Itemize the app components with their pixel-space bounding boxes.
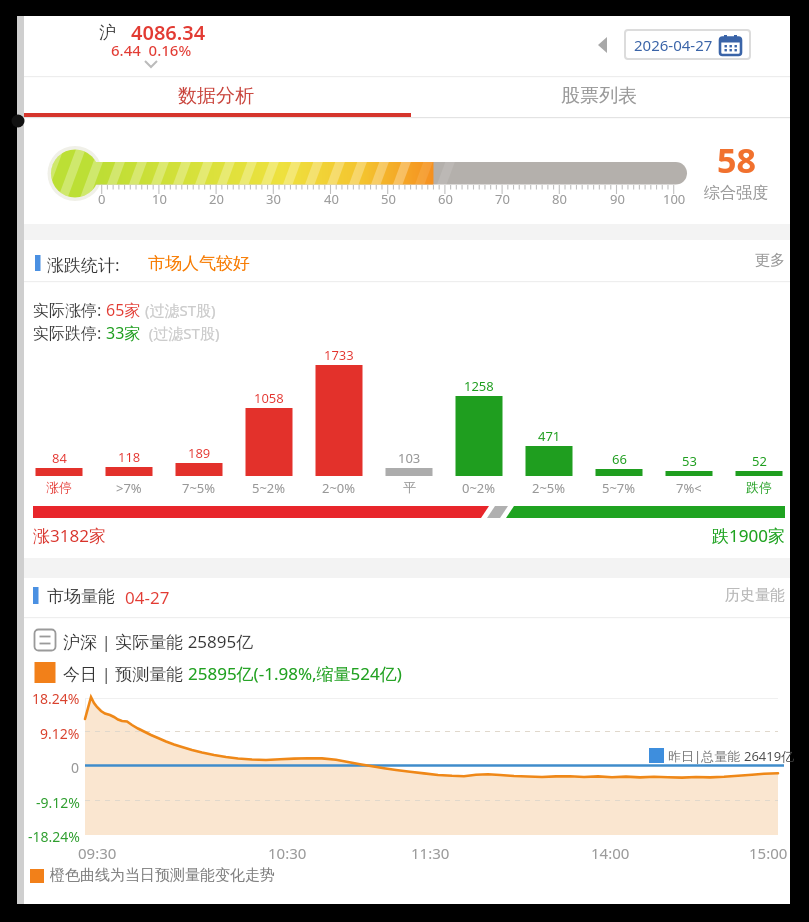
staticText: 跌停 [746,479,772,495]
staticText: 市场人气较好 [148,253,250,274]
staticText: 7~5% [182,479,216,497]
staticText: 实际跌停: [33,322,106,344]
staticText: 涨停 [46,479,72,495]
staticText: -9.12% [36,793,80,812]
staticText: 2026-04-27 [634,35,713,55]
staticText: 18.24% [32,689,80,708]
staticText: 20 [209,190,224,208]
staticText: 2~5% [532,479,566,497]
button[interactable]: 数据分析 [24,78,407,113]
staticText: 84 [52,449,67,467]
staticText: 涨3182家 [33,524,106,547]
staticText: 53 [682,452,697,470]
staticText: 04-27 [125,586,170,609]
staticText: 1258 [464,377,494,395]
staticText: 100 [663,190,686,208]
staticText: 股票列表 [561,84,637,108]
staticText: 50 [381,190,396,208]
staticText: 90 [610,190,625,208]
staticText: 40 [324,190,339,208]
staticText: 7%< [676,479,702,497]
staticText: 26419亿 [744,747,795,765]
staticText: 5~7% [602,479,636,497]
staticText: 1058 [254,389,284,407]
staticText: 14:00 [591,843,630,863]
staticText: >7% [116,479,142,497]
staticText: 橙色曲线为当日预测量能变化走势 [50,866,275,885]
staticText: 80 [552,190,567,208]
staticText: 33家 [106,322,141,344]
staticText: 0~2% [462,479,496,497]
staticText: 60 [438,190,453,208]
staticText: 沪深 | 实际量能 25895亿 [63,630,254,653]
button[interactable]: 2026-04-27 [624,29,751,60]
staticText: 平 [403,479,416,495]
staticText: 65家 [106,299,141,321]
staticText: 实际涨停: [33,299,106,321]
staticText: 118 [118,448,141,466]
staticText: 9.12% [40,724,80,743]
staticText: 6.44 0.16% [111,40,192,60]
staticText: 跌1900家 [712,524,785,547]
staticText: 1733 [324,346,354,364]
staticText: 66 [612,450,627,468]
staticText: 09:30 [78,843,117,863]
staticText: 10 [152,190,167,208]
staticText: 103 [398,449,421,467]
staticText: 25895亿(-1.98%,缩量524亿) [188,662,402,685]
staticText: 更多 [755,251,785,270]
staticText: (过滤ST股) [141,323,220,343]
staticText: 58 [717,137,756,183]
staticText: -18.24% [28,827,80,846]
staticText: 0 [98,190,106,208]
staticText: 189 [188,444,211,462]
staticText: 数据分析 [178,84,254,108]
staticText: 0 [71,758,80,777]
staticText: 4086.34 [131,19,206,46]
staticText: 52 [752,452,767,470]
staticText: 昨日|总量能 [668,747,744,765]
button[interactable] [30,624,450,654]
staticText: 5~2% [252,479,286,497]
staticText: (过滤ST股) [141,300,216,320]
staticText: 70 [495,190,510,208]
staticText: 15:00 [749,843,788,863]
staticText: 30 [266,190,281,208]
staticText: 11:30 [411,843,450,863]
staticText: 10:30 [268,843,307,863]
staticText: 沪 [99,22,116,43]
staticText: 涨跌统计: [47,253,120,276]
staticText: 471 [538,427,561,445]
button[interactable] [588,28,618,62]
staticText: 今日 | 预测量能 [63,662,188,685]
staticText: 2~0% [322,479,356,497]
staticText: 综合强度 [704,183,768,203]
button[interactable]: 更多 [715,247,785,273]
staticText: 市场量能 [47,586,115,607]
button[interactable]: 股票列表 [407,78,790,113]
staticText: 历史量能 [725,586,785,605]
button[interactable]: 历史量能 [690,582,785,608]
